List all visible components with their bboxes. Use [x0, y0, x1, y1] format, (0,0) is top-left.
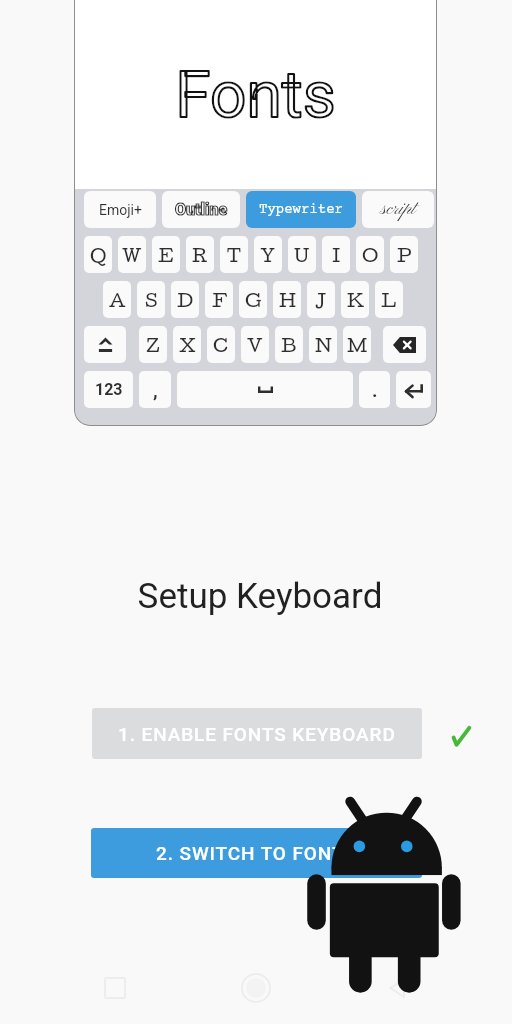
staticText: Fonts — [74, 58, 437, 133]
button[interactable]: O — [356, 236, 384, 273]
button[interactable]: , — [139, 371, 171, 408]
staticText: H — [279, 289, 296, 311]
button[interactable]: G — [239, 281, 267, 318]
button[interactable]: W — [118, 236, 146, 273]
button[interactable]: Emoji+ — [84, 191, 156, 228]
button[interactable]: Space — [177, 371, 353, 408]
staticText: S — [145, 289, 158, 311]
button[interactable]: F — [205, 281, 233, 318]
staticText: P — [397, 244, 412, 266]
button[interactable]: K — [341, 281, 369, 318]
staticText: W — [122, 244, 142, 266]
button[interactable]: N — [309, 326, 337, 363]
other: Enter — [404, 383, 423, 396]
button[interactable]: Back — [371, 962, 423, 1014]
button[interactable]: A — [103, 281, 131, 318]
button[interactable]: Outline — [162, 191, 240, 228]
button[interactable]: 123 — [84, 371, 133, 408]
staticText: X — [179, 334, 196, 356]
button[interactable]: Y — [254, 236, 282, 273]
staticText: M — [347, 334, 368, 356]
button[interactable]: M — [343, 326, 371, 363]
button[interactable]: . — [359, 371, 390, 408]
other: Android robot — [306, 799, 462, 994]
button[interactable]: script — [362, 191, 434, 228]
button[interactable]: Shift — [84, 326, 126, 363]
staticText: 2. SWITCH TO FONTS — [156, 842, 357, 864]
staticText: J — [315, 289, 327, 311]
staticText: Typewriter — [259, 202, 343, 218]
staticText: K — [347, 289, 364, 311]
staticText: C — [213, 334, 229, 356]
button[interactable]: B — [275, 326, 303, 363]
staticText: , — [153, 379, 158, 401]
button[interactable]: Q — [84, 236, 112, 273]
staticText: U — [294, 244, 310, 266]
button[interactable]: C — [207, 326, 235, 363]
button[interactable]: X — [173, 326, 201, 363]
button[interactable]: P — [390, 236, 418, 273]
other: Space — [258, 386, 273, 393]
staticText: L — [381, 289, 397, 311]
staticText: T — [227, 244, 241, 266]
staticText: I — [332, 244, 341, 266]
staticText: 123 — [95, 380, 123, 399]
button[interactable]: D — [171, 281, 199, 318]
staticText: N — [315, 334, 332, 356]
button[interactable]: L — [375, 281, 403, 318]
button[interactable]: E — [152, 236, 180, 273]
staticText: B — [281, 334, 297, 356]
other: Completed — [446, 718, 476, 748]
staticText: Setup Keyboard — [4, 576, 512, 617]
staticText: F — [212, 289, 227, 311]
staticText: O — [362, 244, 379, 266]
other: Shift — [98, 337, 113, 352]
button[interactable]: H — [273, 281, 301, 318]
button[interactable]: 2. SWITCH TO FONTS — [91, 828, 422, 878]
staticText: A — [109, 289, 126, 311]
button[interactable]: J — [307, 281, 335, 318]
button[interactable]: U — [288, 236, 316, 273]
button[interactable]: Backspace — [383, 326, 426, 363]
staticText: script — [381, 198, 416, 222]
staticText: Q — [90, 244, 107, 266]
button[interactable]: Typewriter — [246, 191, 356, 228]
button[interactable]: 1. ENABLE FONTS KEYBOARD — [92, 708, 422, 759]
button[interactable]: V — [241, 326, 269, 363]
button[interactable]: Home — [230, 962, 282, 1014]
other: Backspace — [393, 337, 416, 353]
staticText: Y — [260, 244, 276, 266]
staticText: D — [177, 289, 194, 311]
staticText: V — [247, 334, 263, 356]
staticText: Outline — [175, 200, 228, 219]
button[interactable]: S — [137, 281, 165, 318]
staticText: 1. ENABLE FONTS KEYBOARD — [118, 723, 396, 745]
staticText: Emoji+ — [99, 202, 142, 218]
staticText: . — [372, 379, 378, 401]
staticText: G — [245, 289, 262, 311]
button[interactable]: I — [322, 236, 350, 273]
staticText: R — [192, 244, 208, 266]
button[interactable]: Z — [139, 326, 167, 363]
staticText: E — [158, 244, 174, 266]
button[interactable]: R — [186, 236, 214, 273]
button[interactable]: T — [220, 236, 248, 273]
staticText: Z — [146, 334, 160, 356]
button[interactable]: Enter — [396, 371, 431, 408]
